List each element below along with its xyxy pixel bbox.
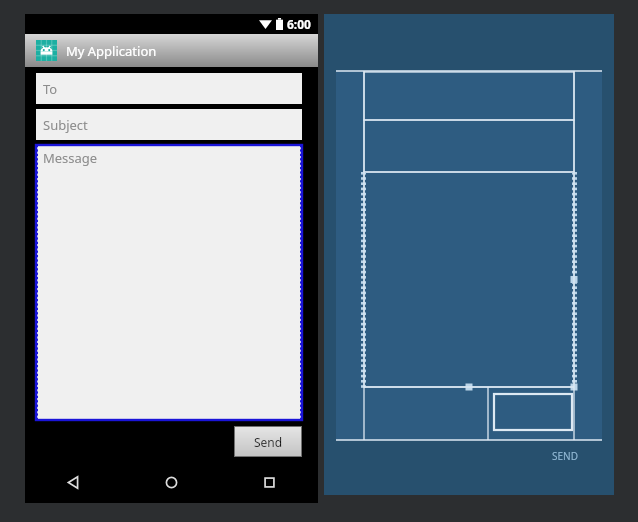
- button[interactable]: Send: [234, 426, 302, 457]
- button[interactable]: SEND: [529, 441, 601, 470]
- button[interactable]: Recents: [220, 461, 318, 503]
- button[interactable]: Message: [36, 145, 302, 420]
- button[interactable]: Home: [122, 461, 220, 503]
- staticText: 6:00: [287, 16, 311, 32]
- staticText: Message: [43, 149, 98, 167]
- button[interactable]: App icon: [25, 34, 318, 67]
- other: App icon: [36, 40, 57, 61]
- staticText: My Application: [66, 42, 157, 60]
- button[interactable]: Subject: [36, 109, 302, 140]
- staticText: Send: [254, 434, 283, 450]
- staticText: Subject: [43, 116, 88, 134]
- button[interactable]: To: [36, 73, 302, 104]
- staticText: SEND: [552, 449, 578, 463]
- button[interactable]: Back: [25, 461, 122, 503]
- staticText: To: [43, 80, 58, 98]
